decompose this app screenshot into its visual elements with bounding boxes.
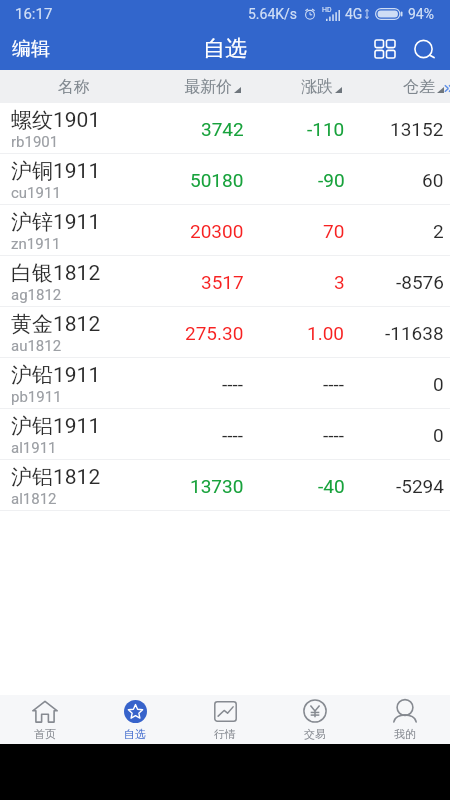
staticText: au1812: [11, 337, 62, 355]
staticText: -8576: [396, 271, 444, 293]
staticText: 3517: [201, 271, 244, 293]
staticText: 自选: [203, 35, 247, 63]
staticText: 70: [323, 220, 345, 242]
staticText: ----: [222, 373, 244, 395]
staticText: ----: [222, 424, 244, 446]
staticText: zn1911: [11, 235, 61, 253]
staticText: 13730: [190, 475, 244, 497]
staticText: 0: [433, 424, 444, 446]
staticText: 沪铝1911: [11, 413, 101, 439]
staticText: al1812: [11, 490, 57, 508]
staticText: 5.64K/s: [248, 6, 298, 22]
staticText: 沪铜1911: [11, 158, 101, 184]
staticText: 3: [334, 271, 345, 293]
staticText: 自选: [124, 727, 146, 741]
button[interactable]: Search: [403, 28, 445, 70]
staticText: pb1911: [11, 388, 62, 406]
staticText: rb1901: [11, 133, 59, 151]
staticText: 最新价: [184, 77, 232, 97]
staticText: -110: [307, 118, 345, 140]
staticText: 沪铅1911: [11, 362, 101, 388]
staticText: 0: [433, 373, 444, 395]
staticText: 13152: [390, 118, 444, 140]
staticText: 行情: [214, 727, 236, 741]
staticText: ag1812: [11, 286, 62, 304]
staticText: 白银1812: [11, 260, 101, 286]
staticText: 涨跌: [301, 77, 333, 97]
button[interactable]: 编辑: [0, 28, 62, 70]
button[interactable]: 我的: [360, 695, 450, 744]
staticText: -90: [318, 169, 345, 191]
staticText: 首页: [34, 727, 56, 741]
staticText: 名称: [58, 77, 90, 97]
staticText: 编辑: [12, 37, 50, 61]
button[interactable]: 沪铅1911: [0, 358, 450, 409]
button[interactable]: 沪铝1911: [0, 409, 450, 460]
staticText: 50180: [190, 169, 244, 191]
staticText: -11638: [385, 322, 444, 344]
staticText: cu1911: [11, 184, 61, 202]
staticText: 沪铝1812: [11, 464, 101, 490]
staticText: 2: [433, 220, 444, 242]
staticText: 94%: [408, 6, 434, 22]
button[interactable]: 首页: [0, 695, 90, 744]
staticText: ----: [323, 373, 345, 395]
staticText: ----: [323, 424, 345, 446]
button[interactable]: 行情: [180, 695, 270, 744]
button[interactable]: 沪铜1911: [0, 154, 450, 205]
staticText: 螺纹1901: [11, 107, 101, 133]
button[interactable]: 沪铝1812: [0, 460, 450, 511]
button[interactable]: 交易: [270, 695, 360, 744]
button[interactable]: 自选: [90, 695, 180, 744]
button[interactable]: Grid view: [364, 28, 406, 70]
staticText: 1.00: [307, 322, 345, 344]
staticText: -40: [318, 475, 345, 497]
staticText: al1911: [11, 439, 57, 457]
staticText: 4G: [345, 6, 363, 22]
staticText: 仓差: [403, 77, 435, 97]
button[interactable]: 黄金1812: [0, 307, 450, 358]
staticText: 20300: [190, 220, 244, 242]
button[interactable]: 螺纹1901: [0, 103, 450, 154]
staticText: 我的: [394, 727, 416, 741]
staticText: 沪锌1911: [11, 209, 101, 235]
staticText: -5294: [396, 475, 444, 497]
staticText: HD: [322, 6, 332, 14]
button[interactable]: 沪锌1911: [0, 205, 450, 256]
button[interactable]: 白银1812: [0, 256, 450, 307]
staticText: 275.30: [185, 322, 244, 344]
staticText: 3742: [201, 118, 244, 140]
staticText: 黄金1812: [11, 311, 101, 337]
staticText: 交易: [304, 727, 326, 741]
staticText: 60: [422, 169, 444, 191]
staticText: 16:17: [15, 5, 53, 23]
